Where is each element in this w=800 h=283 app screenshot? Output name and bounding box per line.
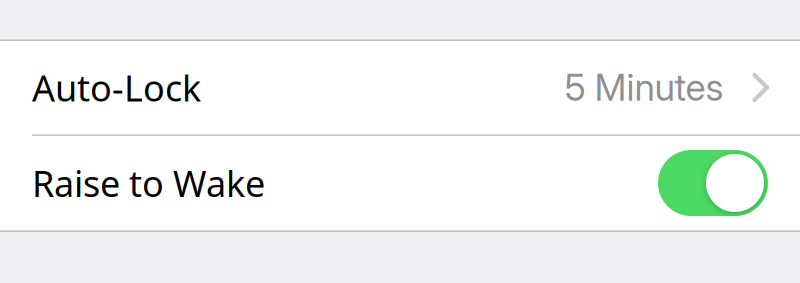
staticText: Raise to Wake: [32, 159, 265, 207]
button[interactable]: Auto-Lock: [0, 41, 800, 134]
staticText: Auto-Lock: [32, 64, 201, 111]
staticText: 5 Minutes: [564, 65, 723, 110]
button[interactable]: Raise to Wake, on: [658, 150, 768, 216]
